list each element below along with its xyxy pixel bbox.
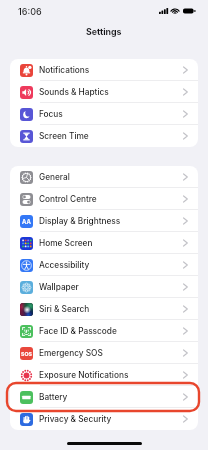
button[interactable]: Battery [10, 386, 198, 408]
staticText: Notifications [39, 65, 183, 75]
staticText: Accessibility [39, 260, 183, 270]
button[interactable]: Focus [10, 103, 198, 125]
button[interactable]: Sounds & Haptics [10, 81, 198, 103]
staticText: Focus [39, 109, 183, 119]
staticText: 16:06 [18, 6, 42, 17]
staticText: Exposure Notifications [39, 370, 183, 380]
button[interactable]: Face ID & Passcode [10, 320, 198, 342]
staticText: General [39, 172, 183, 182]
button[interactable]: Wallpaper [10, 276, 198, 298]
staticText: Emergency SOS [39, 348, 183, 358]
button[interactable]: SOS [10, 342, 198, 364]
staticText: SOS [21, 351, 32, 357]
button[interactable]: Siri & Search [10, 298, 198, 320]
staticText: Screen Time [39, 131, 183, 141]
staticText: Face ID & Passcode [39, 326, 183, 336]
staticText: Wallpaper [39, 282, 183, 292]
staticText: Control Centre [39, 194, 183, 204]
staticText: Display & Brightness [39, 216, 183, 226]
button[interactable]: Notifications [10, 59, 198, 81]
button[interactable]: Accessibility [10, 254, 198, 276]
button[interactable]: Exposure Notifications [10, 364, 198, 386]
staticText: AA [22, 218, 31, 225]
button[interactable]: Privacy & Security [10, 408, 198, 430]
button[interactable]: Control Centre [10, 188, 198, 210]
button[interactable]: AA [10, 210, 198, 232]
staticText: Sounds & Haptics [39, 87, 183, 97]
staticText: Battery [39, 392, 183, 402]
staticText: Privacy & Security [39, 414, 183, 424]
staticText: Siri & Search [39, 304, 183, 314]
staticText: Home Screen [39, 238, 183, 248]
staticText: Settings [86, 26, 122, 37]
button[interactable]: General [10, 166, 198, 188]
button[interactable]: Home Screen [10, 232, 198, 254]
button[interactable]: Screen Time [10, 125, 198, 147]
